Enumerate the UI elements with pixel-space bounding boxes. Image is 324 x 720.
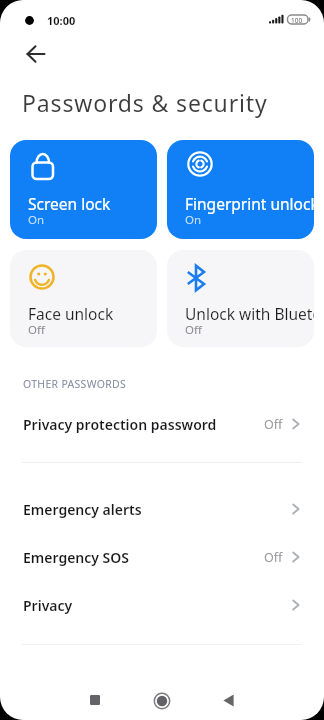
button[interactable] <box>78 683 112 717</box>
staticText: Unlock with Bluetooth <box>185 303 314 324</box>
staticText: Emergency SOS <box>23 548 130 567</box>
button[interactable]: Fingerprint unlock <box>167 140 314 239</box>
button[interactable] <box>211 683 245 717</box>
staticText: Privacy protection password <box>23 415 217 434</box>
button[interactable] <box>145 683 179 717</box>
button[interactable]: Emergency alerts <box>0 485 324 533</box>
staticText: Off <box>264 416 283 433</box>
button[interactable]: Face unlock <box>10 250 157 347</box>
staticText: OTHER PASSWORDS <box>23 377 126 391</box>
staticText: 100 <box>291 16 303 25</box>
staticText: 10:00 <box>47 13 76 28</box>
button[interactable]: Privacy <box>0 581 324 629</box>
staticText: Passwords & security <box>22 87 268 118</box>
staticText: Privacy <box>23 596 73 615</box>
staticText: On <box>185 212 202 228</box>
button[interactable] <box>20 40 52 68</box>
staticText: Fingerprint unlock <box>185 193 314 214</box>
staticText: Off <box>264 549 283 566</box>
staticText: Face unlock <box>28 303 114 324</box>
button[interactable]: Unlock with Bluetooth <box>167 250 314 347</box>
button[interactable]: Screen lock <box>10 140 157 239</box>
staticText: Off <box>185 322 202 338</box>
staticText: Screen lock <box>28 193 111 214</box>
staticText: On <box>28 212 45 228</box>
staticText: Emergency alerts <box>23 500 142 519</box>
staticText: Off <box>28 322 45 338</box>
button[interactable]: Emergency SOS <box>0 533 324 581</box>
button[interactable]: Privacy protection password <box>0 400 324 448</box>
